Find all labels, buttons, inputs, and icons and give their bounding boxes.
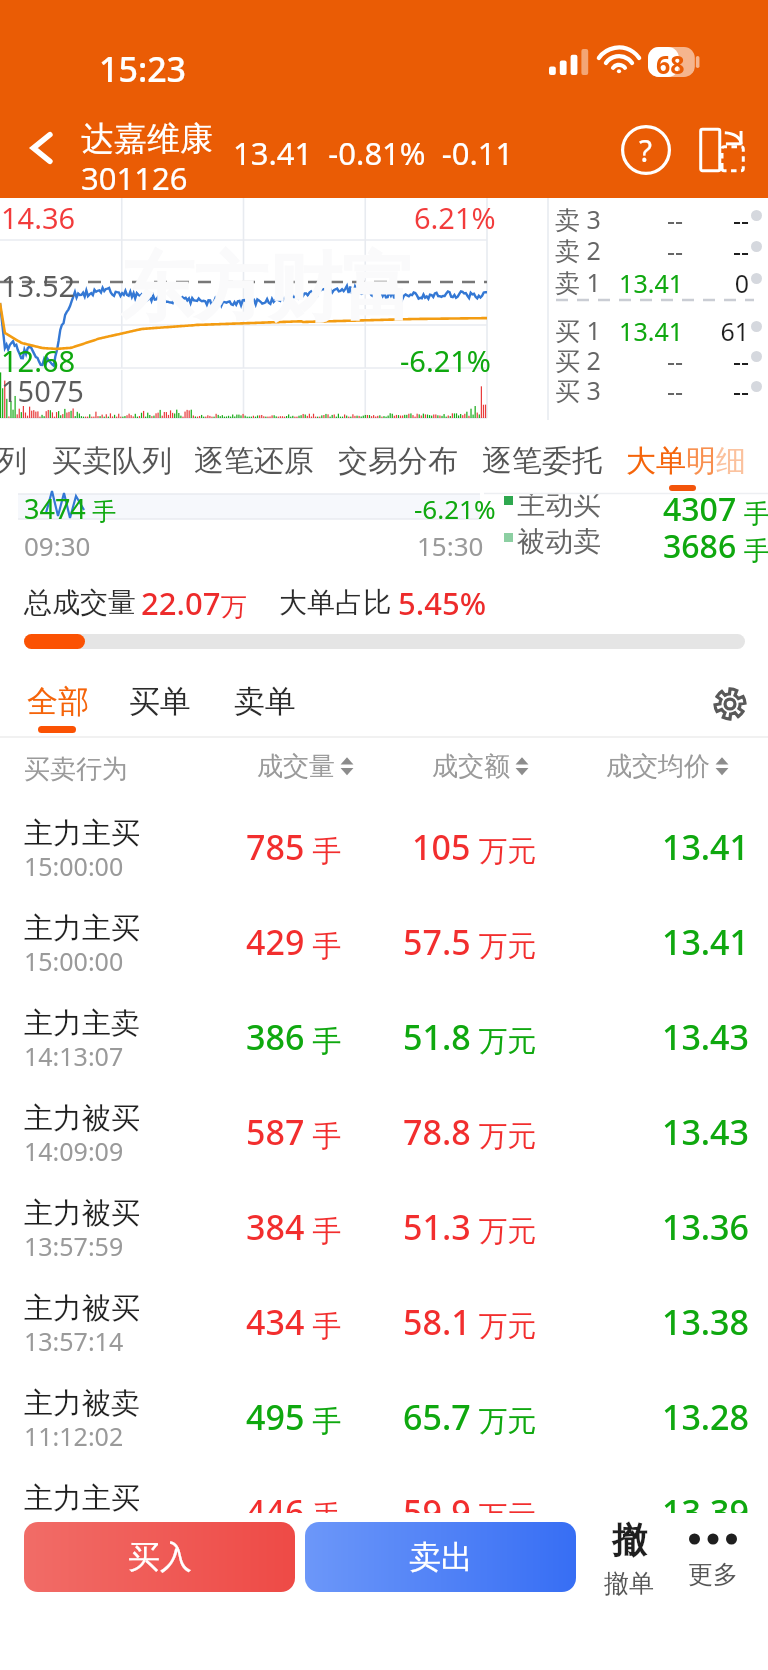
- staticText: 东方财富: [120, 242, 416, 335]
- staticText: 13.43: [564, 1109, 749, 1155]
- staticText: --: [604, 203, 683, 234]
- button[interactable]: 主力主买: [0, 788, 768, 883]
- staticText: 13:57:14: [24, 1324, 124, 1358]
- staticText: 446: [246, 1489, 305, 1535]
- button[interactable]: Help: [608, 112, 684, 188]
- staticText: 386: [246, 1014, 305, 1060]
- staticText: 主力主买: [24, 910, 140, 947]
- button[interactable]: 买 2: [548, 340, 768, 371]
- staticText: ?: [639, 130, 653, 171]
- staticText: 成交均价: [606, 750, 710, 783]
- button[interactable]: 撤: [588, 1518, 670, 1599]
- staticText: 0: [690, 266, 749, 297]
- staticText: 被动卖: [517, 524, 601, 559]
- staticText: 卖出: [409, 1537, 473, 1577]
- staticText: 15:00:00: [24, 849, 124, 883]
- staticText: 手: [305, 1115, 342, 1155]
- staticText: --: [604, 234, 683, 265]
- button[interactable]: 主力主买: [0, 1453, 768, 1548]
- staticText: 4307: [663, 487, 737, 531]
- button[interactable]: 大单: [626, 442, 746, 480]
- button[interactable]: 卖 2: [548, 230, 768, 261]
- staticText: 105: [412, 824, 471, 870]
- staticText: 65.7: [403, 1394, 471, 1440]
- button[interactable]: 成交均价: [606, 745, 729, 787]
- staticText: 撤: [612, 1518, 647, 1562]
- staticText: 51.3: [403, 1204, 471, 1250]
- button[interactable]: Back: [8, 110, 76, 186]
- staticText: 13.43: [564, 1014, 749, 1060]
- staticText: --: [690, 203, 749, 234]
- staticText: 万元: [471, 1115, 537, 1155]
- staticText: 主力被买: [24, 1100, 140, 1137]
- staticText: 12.68: [1, 341, 76, 380]
- button[interactable]: 列: [0, 442, 27, 480]
- staticText: 卖 3: [555, 202, 601, 233]
- button[interactable]: 主力被买: [0, 1073, 768, 1168]
- button[interactable]: 卖 1: [548, 262, 768, 293]
- button[interactable]: 主力主买: [0, 883, 768, 978]
- button[interactable]: 更多: [672, 1518, 754, 1590]
- button[interactable]: 逐笔还原: [194, 442, 314, 480]
- staticText: 51.8: [403, 1014, 471, 1060]
- staticText: 手: [305, 830, 342, 870]
- staticText: 主力被买: [24, 1195, 140, 1232]
- staticText: --: [690, 374, 749, 405]
- staticText: -6.21%: [414, 491, 496, 526]
- staticText: 13.36: [564, 1204, 749, 1250]
- staticText: --: [690, 344, 749, 375]
- staticText: --: [690, 234, 749, 265]
- button[interactable]: 成交量: [257, 745, 354, 787]
- staticText: 3686: [663, 524, 737, 568]
- staticText: 主力被卖: [24, 1385, 140, 1422]
- staticText: 14:13:07: [24, 1039, 124, 1073]
- staticText: 13.41: [564, 824, 749, 870]
- button[interactable]: 卖单: [210, 666, 316, 738]
- staticText: 全部: [27, 682, 89, 721]
- staticText: 万元: [471, 925, 537, 965]
- button[interactable]: 买入: [24, 1522, 295, 1592]
- staticText: 手: [86, 494, 117, 527]
- button[interactable]: Settings: [699, 671, 759, 731]
- staticText: 78.8: [403, 1109, 471, 1155]
- button[interactable]: 买 3: [548, 370, 768, 401]
- staticText: 手: [737, 495, 768, 531]
- staticText: 5.45%: [398, 582, 487, 624]
- staticText: 总成交量: [24, 585, 136, 620]
- staticText: 成交量: [257, 750, 335, 783]
- staticText: 495: [246, 1394, 305, 1440]
- staticText: 撤单: [604, 1568, 654, 1599]
- staticText: 13.41 -0.81% -0.11: [233, 132, 514, 174]
- staticText: 万元: [471, 1305, 537, 1345]
- staticText: 13.52: [1, 266, 76, 305]
- button[interactable]: 主力被买: [0, 1263, 768, 1358]
- staticText: 手: [305, 925, 342, 965]
- button[interactable]: 主力被买: [0, 1168, 768, 1263]
- staticText: 手: [305, 1210, 342, 1250]
- button[interactable]: 买 1: [548, 310, 768, 341]
- staticText: 买 1: [555, 313, 601, 344]
- staticText: 58.1: [403, 1299, 471, 1345]
- button[interactable]: 成交额: [432, 745, 529, 787]
- button[interactable]: 卖出: [305, 1522, 576, 1592]
- button[interactable]: 交易分布: [338, 442, 458, 480]
- button[interactable]: 买单: [105, 666, 211, 738]
- staticText: 买 2: [555, 343, 601, 374]
- button[interactable]: 买卖队列: [52, 442, 172, 480]
- button[interactable]: Rotate screen: [684, 112, 760, 188]
- staticText: 主力主买: [24, 1480, 140, 1517]
- staticText: 成交额: [432, 750, 510, 783]
- button[interactable]: 主力主卖: [0, 978, 768, 1073]
- staticText: 主力被买: [24, 1290, 140, 1327]
- staticText: 卖 2: [555, 233, 601, 264]
- button[interactable]: 逐笔委托: [482, 442, 602, 480]
- button[interactable]: 主力被卖: [0, 1358, 768, 1453]
- button[interactable]: 全部: [3, 666, 109, 738]
- staticText: 卖 1: [555, 265, 601, 296]
- staticText: -6.21%: [400, 341, 491, 380]
- staticText: 15:30: [417, 528, 484, 563]
- staticText: 万元: [471, 830, 537, 870]
- button[interactable]: 卖 3: [548, 199, 768, 230]
- staticText: 13.28: [564, 1394, 749, 1440]
- staticText: 买单: [129, 682, 191, 721]
